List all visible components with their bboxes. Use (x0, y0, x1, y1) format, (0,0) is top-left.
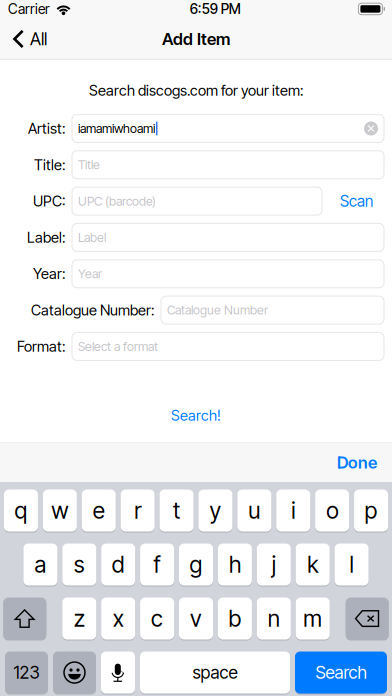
button[interactable]: q (4, 490, 38, 533)
staticText: w (51, 497, 68, 524)
button[interactable]: a (23, 543, 57, 586)
staticText: p (364, 497, 377, 524)
staticText: z (74, 605, 85, 632)
staticText: 6:59 PM (190, 0, 241, 17)
button[interactable]: Search! (155, 401, 237, 430)
staticText: UPC (barcode) (78, 194, 156, 209)
staticText: Label: (27, 229, 65, 246)
staticText: Select a format (78, 339, 158, 354)
button[interactable]: Scan (322, 187, 384, 215)
button[interactable]: g (179, 543, 213, 586)
button[interactable]: s (62, 543, 96, 586)
staticText: Title: (34, 156, 65, 174)
staticText: Format: (17, 338, 65, 355)
button[interactable]: z (62, 597, 96, 640)
staticText: Catalogue Number (167, 303, 268, 318)
staticText: Carrier (8, 0, 50, 17)
button[interactable]: k (296, 543, 330, 586)
staticText: iamamiwhoami (78, 121, 155, 136)
staticText: 123 (13, 662, 39, 683)
staticText: space (192, 662, 237, 683)
button[interactable]: Dictation (101, 651, 135, 694)
button[interactable]: Done (323, 442, 392, 483)
button[interactable]: y (198, 490, 232, 533)
staticText: a (34, 551, 46, 578)
staticText: Year (78, 266, 102, 281)
staticText: r (134, 497, 141, 524)
staticText: UPC: (33, 192, 65, 210)
staticText: u (248, 497, 260, 524)
button[interactable]: Shift (3, 597, 46, 640)
button[interactable]: h (218, 543, 252, 586)
button[interactable]: j (257, 543, 291, 586)
button[interactable]: Emoji (53, 651, 96, 694)
staticText: l (350, 551, 354, 578)
button[interactable]: All (0, 23, 55, 54)
button[interactable]: m (296, 597, 330, 640)
button[interactable]: e (82, 490, 116, 533)
button[interactable]: x (101, 597, 135, 640)
staticText: e (93, 497, 105, 524)
staticText: Search (315, 662, 366, 683)
button[interactable]: p (354, 490, 388, 533)
staticText: j (272, 551, 276, 578)
button[interactable]: 123 (5, 651, 48, 694)
staticText: f (154, 551, 161, 578)
staticText: Year: (33, 265, 65, 283)
button[interactable]: f (140, 543, 174, 586)
staticText: Title (78, 157, 100, 172)
button[interactable]: v (179, 597, 213, 640)
staticText: Catalogue Number: (31, 301, 154, 319)
button[interactable]: c (140, 597, 174, 640)
staticText: o (326, 497, 338, 524)
staticText: x (113, 605, 124, 632)
button[interactable]: d (101, 543, 135, 586)
button[interactable]: o (315, 490, 349, 533)
staticText: Label (78, 230, 106, 245)
staticText: Scan (340, 192, 373, 210)
staticText: d (112, 551, 125, 578)
staticText: t (173, 497, 180, 524)
button[interactable]: w (43, 490, 77, 533)
button[interactable]: Search (295, 651, 387, 694)
button[interactable]: l (335, 543, 369, 586)
staticText: k (307, 551, 318, 578)
staticText: i (291, 497, 295, 524)
button[interactable]: Delete (346, 597, 389, 640)
button[interactable]: u (237, 490, 271, 533)
button[interactable]: r (121, 490, 155, 533)
staticText: m (303, 605, 322, 632)
button[interactable]: n (257, 597, 291, 640)
staticText: s (74, 551, 85, 578)
staticText: v (190, 605, 202, 632)
staticText: c (151, 605, 163, 632)
staticText: g (189, 551, 202, 578)
staticText: Add Item (162, 29, 230, 49)
staticText: q (14, 497, 27, 524)
staticText: n (268, 605, 280, 632)
button[interactable]: space (140, 651, 290, 694)
staticText: Done (337, 452, 377, 473)
staticText: h (229, 551, 241, 578)
button[interactable]: t (159, 490, 193, 533)
staticText: y (209, 497, 221, 524)
button[interactable]: b (218, 597, 252, 640)
staticText: Artist: (28, 120, 65, 137)
staticText: b (228, 605, 241, 632)
staticText: Search discogs.com for your item: (89, 81, 303, 99)
staticText: All (30, 28, 47, 49)
staticText: Search! (171, 407, 221, 424)
button[interactable]: i (276, 490, 310, 533)
